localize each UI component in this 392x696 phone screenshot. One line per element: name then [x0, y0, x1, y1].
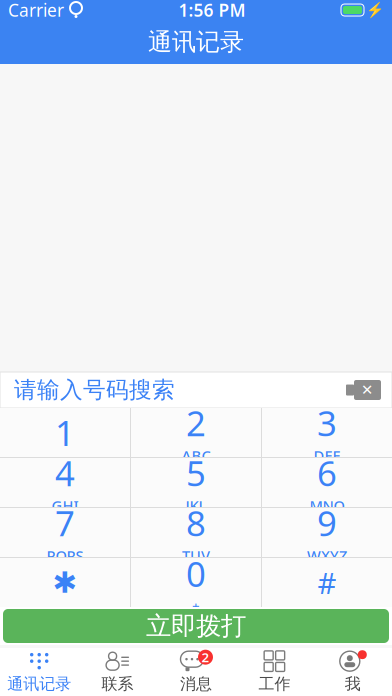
staticText: 1:56 PM	[178, 0, 245, 21]
button[interactable]: #	[262, 558, 392, 607]
staticText: GHI	[51, 496, 78, 515]
button[interactable]: 5	[131, 458, 261, 507]
staticText: ABC	[181, 446, 210, 465]
staticText: 立即拨打	[146, 610, 246, 641]
button[interactable]: 1	[0, 408, 130, 457]
staticText: PQRS	[46, 546, 83, 565]
staticText: 0	[186, 551, 206, 597]
staticText: Carrier	[8, 0, 64, 21]
staticText: MNO	[309, 496, 344, 515]
button[interactable]: 4	[0, 458, 130, 507]
button[interactable]: 我	[314, 648, 392, 696]
staticText: WXYZ	[307, 546, 347, 565]
staticText: 1	[55, 409, 75, 455]
button[interactable]: 8	[131, 508, 261, 557]
button[interactable]: 删除	[346, 380, 381, 400]
staticText: 2	[201, 648, 209, 666]
staticText: 4	[55, 450, 75, 496]
staticText: ⚡	[366, 2, 384, 18]
staticText: 3	[317, 400, 337, 446]
staticText: 消息	[180, 674, 212, 694]
staticText: 2	[186, 400, 206, 446]
staticText: TUV	[182, 546, 210, 565]
button[interactable]: 0	[131, 558, 261, 607]
button[interactable]: ✱	[0, 558, 130, 607]
staticText: #	[317, 563, 336, 602]
button[interactable]: 立即拨打	[3, 609, 389, 643]
button[interactable]: 联系	[78, 648, 157, 696]
staticText: JKL	[185, 496, 206, 515]
staticText: 7	[55, 500, 75, 546]
button[interactable]: 3	[262, 408, 392, 457]
staticText: +	[192, 597, 200, 614]
button[interactable]: 9	[262, 508, 392, 557]
button[interactable]: 通讯记录	[0, 648, 78, 696]
staticText: 我	[345, 674, 361, 694]
staticText: 9	[317, 500, 337, 546]
staticText: 通讯记录	[148, 27, 244, 57]
button[interactable]: 2	[131, 408, 261, 457]
staticText: 请输入号码搜索	[14, 376, 175, 404]
button[interactable]: 7	[0, 508, 130, 557]
staticText: 通讯记录	[7, 674, 71, 694]
staticText: 5	[186, 450, 206, 496]
staticText: 6	[317, 450, 337, 496]
button[interactable]: 6	[262, 458, 392, 507]
staticText: ✱	[52, 566, 77, 599]
staticText: ✕	[361, 382, 373, 398]
staticText: 8	[186, 500, 206, 546]
button[interactable]: 2	[157, 648, 235, 696]
staticText: 工作	[258, 674, 290, 694]
button[interactable]: 工作	[235, 648, 314, 696]
staticText: 联系	[102, 674, 134, 694]
staticText: DEF	[313, 446, 340, 465]
